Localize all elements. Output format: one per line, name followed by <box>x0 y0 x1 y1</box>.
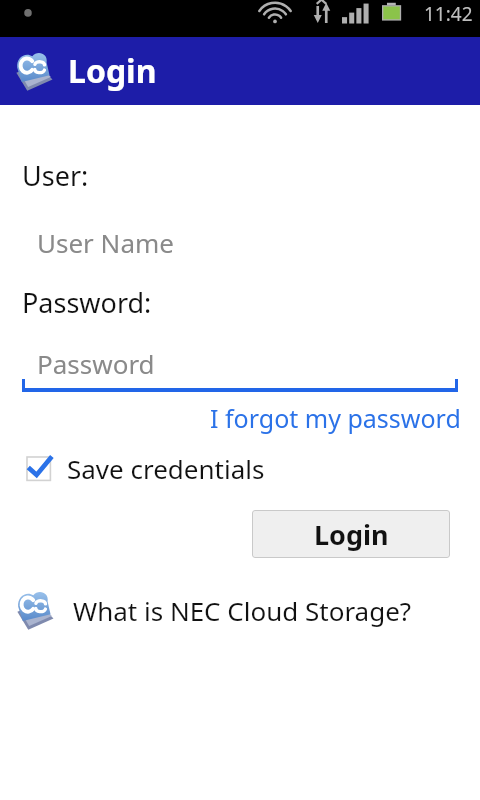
button[interactable]: Login <box>252 510 450 558</box>
other: Save credentials checkbox <box>24 454 54 484</box>
button[interactable]: Save credentials checkbox <box>0 451 480 486</box>
staticText: Login <box>68 49 157 93</box>
staticText: 11:42 <box>424 1 473 27</box>
staticText: Password: <box>22 284 152 321</box>
staticText: User Name <box>37 225 174 260</box>
staticText: Login <box>314 516 389 553</box>
staticText: Password <box>37 346 155 381</box>
staticText: User: <box>22 157 89 194</box>
button[interactable]: User Name <box>0 220 480 264</box>
button[interactable]: I forgot my password <box>191 397 480 439</box>
staticText: I forgot my password <box>210 401 461 435</box>
staticText: Save credentials <box>67 451 265 486</box>
button[interactable]: Password <box>0 343 480 393</box>
button[interactable]: What is NEC Cloud Storage? <box>0 589 480 631</box>
staticText: What is NEC Cloud Storage? <box>73 593 412 628</box>
